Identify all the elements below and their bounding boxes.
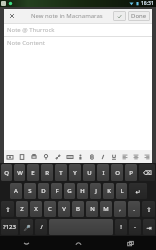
button[interactable]: Note @ Thurrock — [4, 24, 152, 36]
button[interactable]: Home — [52, 236, 104, 250]
staticText: New note in Macnamaras — [31, 12, 103, 20]
button[interactable]: E — [27, 164, 39, 181]
staticText: Y — [73, 169, 77, 177]
button[interactable]: , — [114, 201, 126, 217]
button[interactable]: Person — [75, 150, 86, 163]
button[interactable]: T — [55, 164, 67, 181]
staticText: Done — [131, 12, 147, 20]
button[interactable]: Location — [40, 150, 52, 163]
button[interactable]: R — [41, 164, 53, 181]
staticText: Note Content — [7, 39, 45, 47]
button[interactable]: S — [24, 183, 36, 199]
staticText: V — [62, 205, 66, 213]
staticText: F — [55, 187, 59, 195]
button[interactable]: / — [35, 219, 47, 235]
staticText: A — [14, 187, 18, 195]
staticText: 16:31 — [141, 0, 154, 7]
button[interactable]: H — [77, 183, 88, 199]
staticText: X — [34, 205, 38, 213]
button[interactable]: K — [103, 183, 114, 199]
staticText: C — [48, 205, 52, 213]
button[interactable]: X — [30, 201, 42, 217]
button[interactable]: Z — [16, 201, 28, 217]
button[interactable]: Shift — [1, 201, 14, 217]
button[interactable]: O — [111, 164, 123, 181]
button[interactable]: - — [129, 219, 141, 235]
staticText: Note @ Thurrock — [7, 26, 55, 34]
button[interactable]: Done — [128, 11, 150, 21]
staticText: Z — [20, 205, 24, 213]
staticText: J — [95, 187, 97, 195]
button[interactable]: Align right — [141, 150, 152, 163]
button[interactable]: Align center — [130, 150, 141, 163]
button[interactable]: Bold — [86, 150, 97, 163]
button[interactable]: Shift — [142, 201, 155, 217]
button[interactable]: L — [116, 183, 127, 199]
button[interactable]: A — [10, 183, 22, 199]
button[interactable]: I — [97, 164, 109, 181]
button[interactable]: Backspace — [139, 164, 155, 181]
button[interactable]: Underline — [108, 150, 119, 163]
staticText: P — [129, 169, 133, 177]
button[interactable]: U — [83, 164, 95, 181]
staticText: R — [45, 169, 49, 177]
staticText: ?123 — [3, 223, 16, 231]
staticText: ⇥ — [146, 224, 152, 231]
button[interactable]: F — [51, 183, 62, 199]
button[interactable]: P — [125, 164, 137, 181]
button[interactable]: J — [90, 183, 101, 199]
button[interactable]: V — [58, 201, 70, 217]
button[interactable]: Back — [0, 236, 52, 250]
staticText: . — [133, 205, 135, 213]
button[interactable]: Link — [52, 150, 64, 163]
button[interactable]: C — [44, 201, 56, 217]
button[interactable]: N — [86, 201, 98, 217]
staticText: S — [28, 187, 32, 195]
staticText: K — [107, 187, 111, 195]
button[interactable]: Q — [1, 164, 12, 181]
button[interactable]: G — [64, 183, 75, 199]
button[interactable]: D — [38, 183, 49, 199]
button[interactable]: Symbols — [1, 219, 18, 235]
staticText: , — [119, 205, 121, 213]
button[interactable]: Table — [64, 150, 75, 163]
button[interactable]: Recent apps — [104, 236, 156, 250]
button[interactable]: B — [72, 201, 84, 217]
staticText: 🎤 — [23, 224, 31, 231]
button[interactable]: Save — [113, 11, 126, 21]
button[interactable]: Document — [16, 150, 28, 163]
button[interactable]: Attachment — [28, 150, 40, 163]
button[interactable]: Y — [69, 164, 81, 181]
staticText: ⌫ — [143, 169, 152, 176]
staticText: L — [120, 187, 124, 195]
staticText: - — [134, 223, 136, 231]
button[interactable]: M — [100, 201, 112, 217]
button[interactable]: Note Content — [4, 37, 152, 49]
staticText: U — [87, 169, 92, 177]
button[interactable]: Enter — [129, 183, 147, 199]
button[interactable]: Voice input — [20, 219, 33, 235]
button[interactable]: W — [14, 164, 25, 181]
staticText: ! — [120, 223, 122, 231]
button[interactable]: Photo — [4, 150, 16, 163]
staticText: ⇧ — [5, 206, 11, 213]
staticText: D — [41, 187, 46, 195]
button[interactable]: Close — [4, 9, 20, 23]
staticText: O — [115, 169, 120, 177]
staticText: G — [67, 187, 72, 195]
staticText: ⇧ — [146, 206, 152, 213]
staticText: T — [59, 169, 63, 177]
staticText: ↵ — [135, 188, 141, 195]
staticText: N — [90, 205, 95, 213]
staticText: E — [31, 169, 35, 177]
button[interactable]: ! — [115, 219, 127, 235]
button[interactable]: Italic — [97, 150, 108, 163]
button[interactable]: Next — [143, 219, 155, 235]
button[interactable]: Space — [49, 219, 113, 235]
staticText: B — [76, 205, 80, 213]
staticText: I — [102, 169, 105, 177]
button[interactable]: Align left — [119, 150, 130, 163]
button[interactable]: . — [128, 201, 140, 217]
staticText: M — [103, 205, 109, 213]
